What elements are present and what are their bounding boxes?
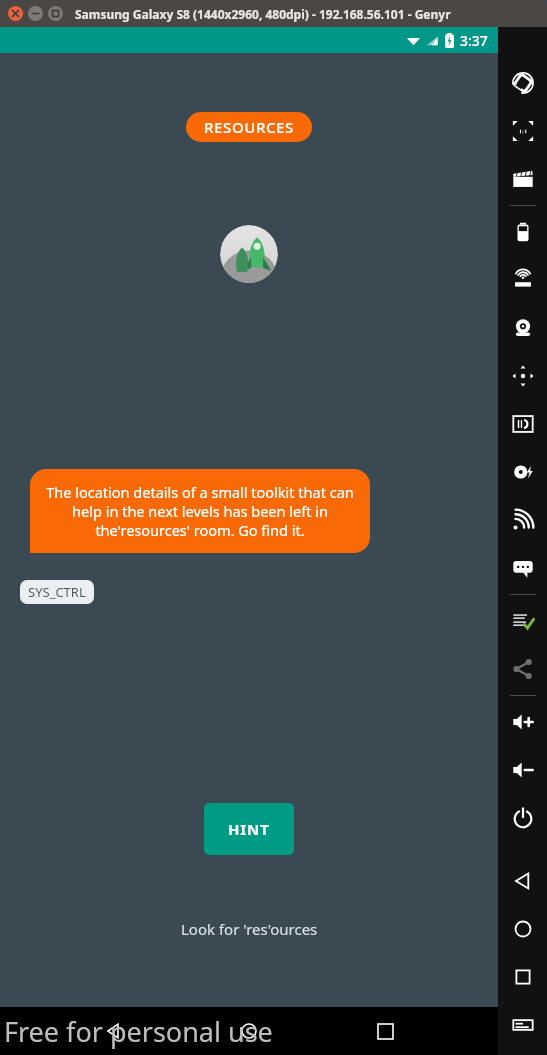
button[interactable]: Network [498,496,547,544]
button[interactable]: Volume up [498,698,547,746]
staticText: Look for 'res'ources [181,919,318,939]
button[interactable]: Avatar [220,225,278,283]
button[interactable]: Power [498,794,547,842]
button[interactable]: The location details of a small toolkit … [30,469,370,553]
button[interactable]: Record screen [498,155,547,203]
staticText: RESOURCES [204,117,294,137]
button[interactable]: RESOURCES [186,112,312,142]
staticText: 3:37 [460,31,488,50]
button[interactable]: SYS_CTRL [20,580,94,604]
button[interactable]: Recents [363,1009,407,1053]
button[interactable]: Home [227,1009,271,1053]
staticText: Free for personal use [4,1013,273,1050]
button[interactable]: Home [498,905,547,953]
button[interactable]: Minimize [28,6,43,21]
button[interactable]: Back [498,857,547,905]
button[interactable]: Battery [498,208,547,256]
staticText: HINT [228,819,270,839]
button[interactable]: Recents [498,953,547,1001]
button[interactable]: Disk IO [498,448,547,496]
button[interactable]: Maximize [48,6,63,21]
button[interactable]: Camera [498,304,547,352]
button[interactable]: Close [8,6,23,21]
button[interactable]: GPS [498,256,547,304]
button[interactable]: Messages [498,544,547,592]
button[interactable]: Back [92,1009,136,1053]
staticText: The location details of a small toolkit … [46,482,354,540]
staticText: SYS_CTRL [28,583,86,601]
button[interactable]: Keyboard [498,1001,547,1049]
staticText: Samsung Galaxy S8 (1440x2960, 480dpi) - … [75,6,451,22]
button[interactable]: Volume down [498,746,547,794]
button[interactable]: Identifiers [498,400,547,448]
button[interactable]: Open GAPPS [498,597,547,645]
button[interactable]: Zoom 1 to 1 [498,107,547,155]
button[interactable]: D-pad [498,352,547,400]
button[interactable]: Share [498,645,547,693]
button[interactable]: Rotate [498,59,547,107]
button[interactable]: HINT [204,803,294,855]
